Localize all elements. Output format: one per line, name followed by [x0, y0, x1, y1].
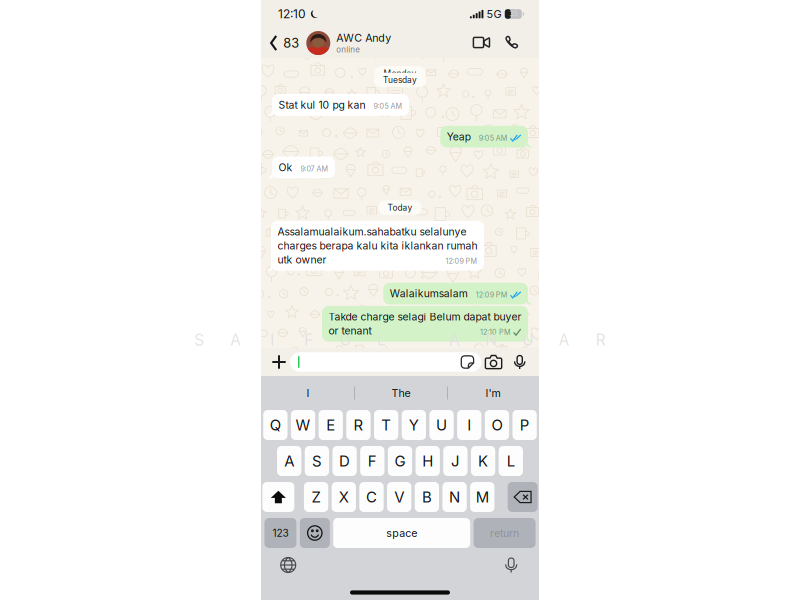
button[interactable]: Camera [484, 354, 502, 369]
staticText: Monday [383, 68, 416, 79]
button[interactable]: space [333, 518, 470, 548]
staticText: K [478, 452, 488, 470]
staticText: online [336, 45, 360, 55]
staticText: P [520, 416, 530, 434]
button[interactable]: Y [402, 410, 426, 440]
button[interactable]: I [457, 410, 481, 440]
staticText: J [451, 452, 460, 470]
staticText: A [559, 331, 570, 349]
button[interactable]: P [512, 410, 537, 440]
staticText: Stat kul 10 pg kan [278, 99, 365, 111]
button[interactable]: N [442, 482, 467, 512]
staticText: Today [387, 202, 412, 213]
staticText: 83 [283, 35, 299, 51]
staticText: 9:05 AM [373, 102, 402, 111]
staticText: O [491, 416, 502, 434]
staticText: N [485, 331, 497, 349]
button[interactable]: X [332, 482, 356, 512]
button[interactable]: I [262, 380, 354, 406]
staticText: Yeap [447, 130, 471, 143]
staticText: Ok [278, 161, 292, 174]
staticText: charges berapa kalu kita iklankan rumah [277, 239, 477, 252]
staticText: I [307, 386, 310, 399]
button[interactable]: R [346, 410, 371, 440]
staticText: or tenant [328, 324, 371, 337]
staticText: S [194, 331, 204, 349]
staticText: F [304, 331, 313, 349]
button[interactable]: Voice message [513, 354, 526, 370]
staticText: 12:09 PM [476, 290, 508, 299]
staticText: Tuesday [383, 75, 417, 85]
button[interactable]: M [470, 482, 494, 512]
button[interactable]: J [443, 446, 467, 476]
staticText: Takde charge selagi Belum dapat buyer [328, 310, 521, 323]
button[interactable]: B [415, 482, 439, 512]
staticText: Walaikumsalam [390, 287, 468, 300]
button[interactable]: K [471, 446, 495, 476]
staticText: M [476, 488, 489, 506]
button[interactable]: Delete [508, 482, 538, 512]
button[interactable]: Switch keyboard [280, 557, 296, 573]
button[interactable]: Shift [262, 482, 294, 512]
staticText: S [312, 452, 322, 470]
button[interactable]: C [359, 482, 384, 512]
staticText: U [522, 331, 533, 349]
staticText: T [381, 416, 391, 434]
staticText: V [394, 488, 404, 506]
button[interactable]: 123 [264, 518, 296, 548]
staticText: R [353, 416, 363, 434]
button[interactable]: W [291, 410, 315, 440]
button[interactable]: I'm [448, 380, 538, 406]
button[interactable]: Q [263, 410, 287, 440]
staticText: 9:05 AM [479, 134, 508, 142]
button[interactable]: S [305, 446, 329, 476]
staticText: 12:10 PM [480, 328, 511, 336]
button[interactable]: D [332, 446, 357, 476]
staticText: I'm [485, 386, 500, 399]
button[interactable]: Attach [268, 349, 290, 375]
button[interactable]: G [388, 446, 412, 476]
staticText: Q [270, 416, 281, 434]
button[interactable]: A [277, 446, 301, 476]
staticText: I [467, 416, 471, 434]
staticText: 33 [509, 10, 517, 18]
staticText: AWC Andy [336, 31, 391, 44]
button[interactable]: Video call [467, 28, 497, 58]
button[interactable]: return [474, 518, 536, 548]
staticText: The [391, 386, 410, 399]
button[interactable]: 83 [261, 28, 306, 58]
staticText [416, 331, 420, 349]
staticText: U [436, 416, 447, 434]
staticText: D [339, 452, 350, 470]
button[interactable]: U [429, 410, 454, 440]
staticText: F [368, 452, 377, 470]
staticText: N [449, 488, 460, 506]
button[interactable]: T [374, 410, 398, 440]
staticText: return [490, 526, 519, 539]
button[interactable]: Z [304, 482, 328, 512]
staticText: 12:10 [278, 7, 306, 21]
staticText: R [596, 331, 606, 349]
button[interactable]: F [360, 446, 384, 476]
button[interactable]: AWC Andy [306, 28, 391, 58]
button[interactable]: H [415, 446, 440, 476]
staticText: H [422, 452, 433, 470]
button[interactable]: Stickers [460, 355, 474, 369]
staticText: B [422, 488, 432, 506]
staticText: A [449, 331, 460, 349]
button[interactable]: The [355, 380, 447, 406]
button[interactable]: Dictate [504, 557, 518, 573]
button[interactable]: E [319, 410, 343, 440]
staticText: I [270, 331, 274, 349]
button[interactable]: Voice call [498, 28, 526, 58]
button[interactable]: V [387, 482, 411, 512]
staticText: 9:07 AM [300, 164, 328, 173]
button[interactable]: L [499, 446, 523, 476]
staticText: Assalamualaikum.sahabatku selalunye [277, 225, 466, 238]
button[interactable]: O [485, 410, 509, 440]
button[interactable]: Emoji [300, 518, 330, 548]
staticText: A [284, 452, 294, 470]
staticText: G [394, 452, 405, 470]
staticText: U [340, 331, 351, 349]
staticText: X [339, 488, 349, 506]
